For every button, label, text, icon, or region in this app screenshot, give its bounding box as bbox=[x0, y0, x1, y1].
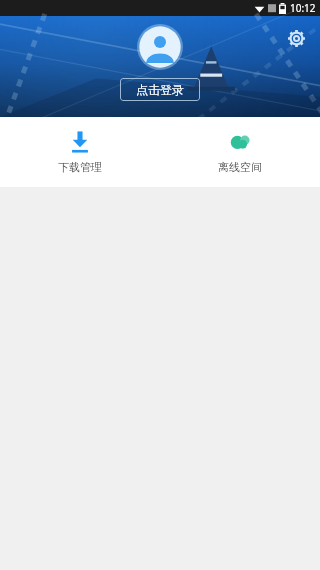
button[interactable]: Settings bbox=[282, 24, 310, 52]
button[interactable]: 离线空间 bbox=[160, 117, 320, 187]
button[interactable]: 点击登录 bbox=[120, 78, 200, 101]
button[interactable]: 下载管理 bbox=[0, 117, 160, 187]
staticText: 10:12 bbox=[290, 1, 316, 15]
staticText: 离线空间 bbox=[218, 160, 262, 174]
staticText: 下载管理 bbox=[58, 160, 102, 174]
staticText: 点击登录 bbox=[136, 82, 184, 97]
